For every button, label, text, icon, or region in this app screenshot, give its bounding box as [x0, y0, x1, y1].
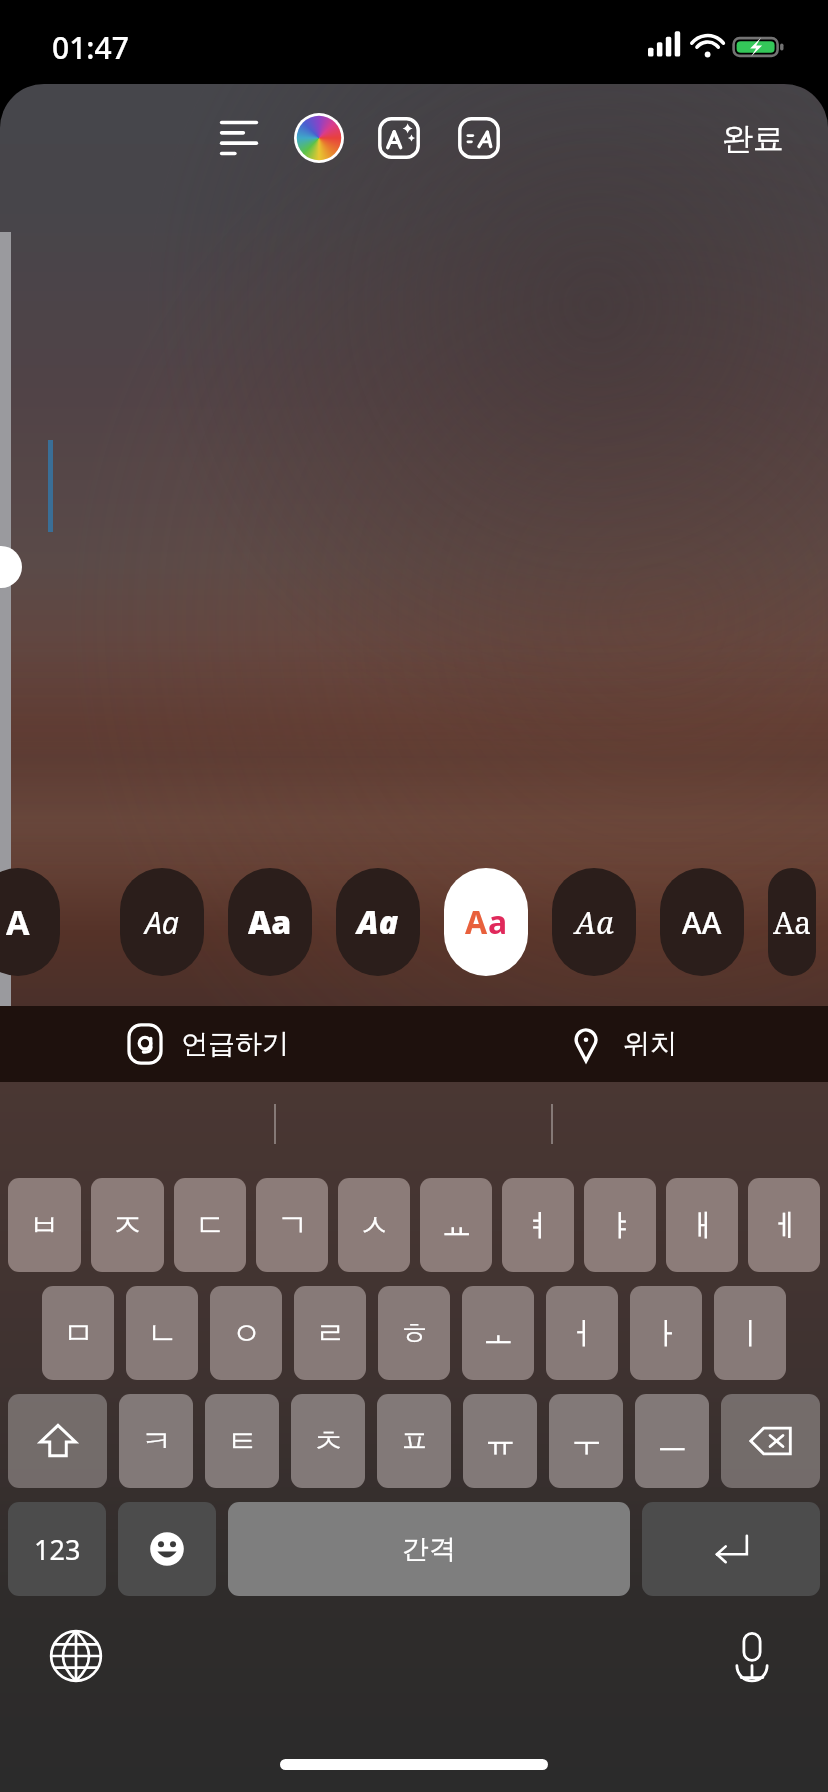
staticText: Aa — [357, 900, 399, 944]
staticText: ㅛ — [441, 1206, 472, 1245]
button[interactable]: ㅡ — [635, 1394, 709, 1488]
button[interactable]: 언급하기 — [0, 1006, 414, 1082]
staticText: Aa — [575, 902, 614, 943]
button[interactable]: Aa — [768, 868, 816, 976]
button[interactable]: Text background — [450, 109, 508, 167]
button[interactable]: A — [0, 868, 60, 976]
staticText: ㅍ — [399, 1422, 430, 1461]
staticText: ㄹ — [315, 1314, 346, 1353]
button[interactable]: ㅠ — [463, 1394, 537, 1488]
staticText: ㅋ — [141, 1422, 172, 1461]
staticText: ㅏ — [651, 1314, 682, 1353]
button[interactable]: 간격 — [228, 1502, 630, 1596]
button[interactable]: Shift — [8, 1394, 107, 1488]
staticText: ㅂ — [29, 1206, 60, 1245]
button[interactable]: ㅌ — [205, 1394, 279, 1488]
button[interactable]: Text alignment — [210, 109, 268, 167]
button[interactable]: ㅋ — [119, 1394, 193, 1488]
staticText: ㅁ — [63, 1314, 94, 1353]
button[interactable]: ㄹ — [294, 1286, 366, 1380]
button[interactable]: 완료 — [706, 111, 800, 166]
button[interactable]: Backspace — [721, 1394, 820, 1488]
staticText: ㄷ — [195, 1206, 226, 1245]
staticText: ㅇ — [231, 1314, 262, 1353]
button[interactable]: Aa — [552, 868, 636, 976]
button[interactable]: ㅣ — [714, 1286, 786, 1380]
button[interactable]: Dictation — [714, 1618, 790, 1694]
button[interactable]: ㄱ — [256, 1178, 328, 1272]
button[interactable]: Text color — [290, 109, 348, 167]
button[interactable]: Change keyboard language — [38, 1618, 114, 1694]
staticText: ㅊ — [313, 1422, 344, 1461]
button[interactable]: Aa — [336, 868, 420, 976]
staticText: Aa — [773, 902, 812, 943]
staticText: ㅅ — [359, 1206, 390, 1245]
staticText: ㄴ — [147, 1314, 178, 1353]
staticText: ㅈ — [112, 1206, 143, 1245]
button[interactable]: ㅈ — [91, 1178, 164, 1272]
staticText: ㅡ — [657, 1422, 688, 1461]
staticText: 완료 — [722, 119, 784, 158]
button[interactable]: ㄷ — [174, 1178, 246, 1272]
staticText: 간격 — [402, 1532, 456, 1566]
button[interactable]: A — [444, 868, 528, 976]
button[interactable]: Return — [642, 1502, 820, 1596]
button[interactable]: ㅇ — [210, 1286, 282, 1380]
button[interactable]: ㅂ — [8, 1178, 81, 1272]
staticText: 위치 — [623, 1027, 677, 1061]
staticText: A — [6, 899, 30, 945]
staticText: ㅌ — [227, 1422, 258, 1461]
staticText: 123 — [34, 1531, 81, 1568]
button[interactable]: Text effects — [370, 109, 428, 167]
button[interactable]: ㅑ — [584, 1178, 656, 1272]
button[interactable]: ㅕ — [502, 1178, 574, 1272]
staticText: 01:47 — [52, 27, 129, 68]
staticText: ㄱ — [277, 1206, 308, 1245]
button[interactable]: ㅊ — [291, 1394, 365, 1488]
staticText: ㅐ — [687, 1206, 718, 1245]
button[interactable]: Aa — [228, 868, 312, 976]
button[interactable]: ㅏ — [630, 1286, 702, 1380]
button[interactable]: AA — [660, 868, 744, 976]
button[interactable]: 위치 — [414, 1006, 828, 1082]
button[interactable]: Emoji — [118, 1502, 216, 1596]
button[interactable]: ㅁ — [42, 1286, 114, 1380]
staticText: ㅕ — [523, 1206, 554, 1245]
button[interactable]: Aa — [120, 868, 204, 976]
staticText: Aa — [248, 900, 292, 944]
staticText: ㅜ — [571, 1422, 602, 1461]
staticText: ㅓ — [567, 1314, 598, 1353]
staticText: ㅣ — [735, 1314, 766, 1353]
button[interactable]: ㅜ — [549, 1394, 623, 1488]
staticText: AA — [682, 902, 722, 943]
button[interactable]: 123 — [8, 1502, 106, 1596]
button[interactable]: ㅔ — [748, 1178, 820, 1272]
staticText: ㅔ — [769, 1206, 800, 1245]
staticText: A — [465, 900, 488, 944]
button[interactable]: ㅛ — [420, 1178, 492, 1272]
button[interactable]: ㅓ — [546, 1286, 618, 1380]
staticText: ㅗ — [483, 1314, 514, 1353]
button[interactable]: ㅐ — [666, 1178, 738, 1272]
staticText: a — [488, 900, 508, 944]
staticText: 언급하기 — [181, 1027, 289, 1061]
button[interactable]: ㄴ — [126, 1286, 198, 1380]
staticText: ㅠ — [485, 1422, 516, 1461]
button[interactable]: ㅍ — [377, 1394, 451, 1488]
button[interactable]: ㅗ — [462, 1286, 534, 1380]
staticText: ㅎ — [399, 1314, 430, 1353]
button[interactable]: ㅅ — [338, 1178, 410, 1272]
staticText: Aa — [145, 902, 179, 943]
button[interactable]: ㅎ — [378, 1286, 450, 1380]
staticText: ㅑ — [605, 1206, 636, 1245]
